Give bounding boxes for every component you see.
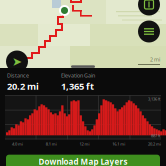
staticText: ➤ — [12, 55, 22, 68]
staticText: Distance — [7, 72, 29, 79]
staticText: 20.2 mi — [148, 141, 161, 147]
button[interactable]: Center on my location — [6, 50, 28, 72]
staticText: 3,136 ft — [148, 96, 160, 102]
staticText: 2 mi — [150, 56, 160, 63]
staticText: 4.0 mi — [12, 141, 23, 147]
staticText: 12 mi — [79, 141, 89, 147]
button[interactable]: Map layers — [138, 20, 160, 42]
staticText: Download Map Layers — [38, 156, 127, 166]
button[interactable]: Download Map Layers — [6, 155, 160, 166]
button[interactable]: 3D view — [138, 0, 160, 15]
staticText: 20.2 mi — [7, 80, 39, 92]
staticText: 887 ft — [151, 133, 160, 138]
staticText: 1,365 ft — [61, 80, 94, 92]
staticText: 8.1 mi — [46, 141, 57, 147]
staticText: 16.1 mi — [112, 141, 125, 147]
staticText: Elevation Gain — [61, 72, 95, 79]
